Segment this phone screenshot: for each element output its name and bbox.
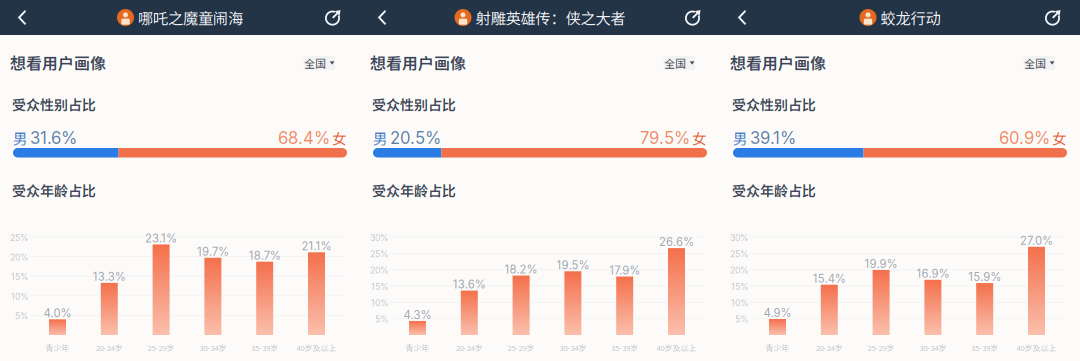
staticText: 受众性别占比 bbox=[372, 94, 456, 114]
staticText: 16.9% bbox=[916, 267, 949, 280]
staticText: 受众年龄占比 bbox=[732, 180, 816, 200]
staticText: 青少年 bbox=[45, 342, 69, 353]
staticText: 25-29岁 bbox=[148, 342, 175, 353]
staticText: 13.3% bbox=[93, 270, 126, 284]
staticText: 30-34岁 bbox=[919, 342, 946, 353]
staticText: 4.9% bbox=[763, 306, 791, 320]
staticText: 25% bbox=[730, 249, 749, 259]
staticText: 25-29岁 bbox=[508, 342, 535, 353]
staticText: 全国 bbox=[304, 55, 326, 71]
staticText: 20% bbox=[730, 265, 749, 276]
staticText: 受众性别占比 bbox=[12, 94, 96, 114]
staticText: 79.5% bbox=[640, 128, 690, 148]
staticText: 25% bbox=[10, 232, 29, 243]
staticText: 19.7% bbox=[197, 245, 229, 258]
staticText: 30% bbox=[370, 232, 389, 243]
staticText: 27.0% bbox=[1020, 234, 1053, 247]
staticText: 15% bbox=[11, 272, 29, 282]
button[interactable]: Back bbox=[720, 0, 765, 35]
button[interactable]: Share bbox=[666, 0, 720, 35]
staticText: 男 bbox=[733, 127, 748, 149]
button[interactable]: Share bbox=[306, 0, 360, 35]
button[interactable]: 全国 bbox=[663, 56, 695, 70]
staticText: 10% bbox=[11, 291, 29, 302]
button[interactable]: Share bbox=[1026, 0, 1080, 35]
staticText: 26.6% bbox=[659, 235, 694, 249]
button[interactable]: Back bbox=[360, 0, 405, 35]
staticText: 哪吒之魔童闹海 bbox=[138, 6, 243, 29]
staticText: 21.1% bbox=[301, 239, 331, 253]
button[interactable]: Back bbox=[0, 0, 45, 35]
staticText: 19.9% bbox=[865, 257, 898, 271]
staticText: 想看用户画像 bbox=[370, 51, 466, 74]
button[interactable]: 全国 bbox=[303, 56, 335, 70]
staticText: 15% bbox=[371, 281, 389, 292]
staticText: 15.9% bbox=[968, 270, 1001, 284]
staticText: 40岁及以上 bbox=[1016, 342, 1056, 353]
staticText: 13.6% bbox=[453, 278, 486, 291]
staticText: 5% bbox=[735, 314, 749, 325]
staticText: 20-24岁 bbox=[456, 342, 483, 353]
staticText: 射雕英雄传：侠之大者 bbox=[475, 6, 625, 29]
staticText: 全国 bbox=[1024, 55, 1046, 71]
staticText: 20% bbox=[10, 252, 29, 263]
staticText: 40岁及以上 bbox=[296, 342, 336, 353]
staticText: 4.3% bbox=[403, 308, 431, 322]
staticText: 60.9% bbox=[999, 128, 1050, 148]
staticText: 想看用户画像 bbox=[10, 51, 106, 74]
staticText: 30-34岁 bbox=[199, 342, 226, 353]
staticText: 68.4% bbox=[278, 128, 330, 148]
staticText: 30-34岁 bbox=[559, 342, 586, 353]
staticText: 31.6% bbox=[30, 128, 77, 148]
staticText: 受众年龄占比 bbox=[372, 180, 456, 200]
staticText: 女 bbox=[692, 127, 707, 149]
staticText: 10% bbox=[371, 298, 389, 308]
staticText: 受众年龄占比 bbox=[12, 180, 96, 200]
staticText: 男 bbox=[373, 127, 388, 149]
staticText: 青少年 bbox=[765, 342, 789, 353]
staticText: 18.7% bbox=[249, 249, 281, 262]
staticText: 男 bbox=[13, 127, 28, 149]
staticText: 23.1% bbox=[145, 231, 177, 245]
staticText: 35-39岁 bbox=[971, 342, 998, 353]
staticText: 4.0% bbox=[43, 306, 71, 320]
staticText: 蛟龙行动 bbox=[880, 6, 940, 29]
staticText: 25-29岁 bbox=[868, 342, 895, 353]
staticText: 19.5% bbox=[556, 258, 589, 272]
staticText: 40岁及以上 bbox=[656, 342, 696, 353]
staticText: 20.5% bbox=[390, 128, 441, 148]
staticText: 20-24岁 bbox=[816, 342, 843, 353]
staticText: 15% bbox=[731, 281, 749, 292]
staticText: 青少年 bbox=[405, 342, 429, 353]
staticText: 想看用户画像 bbox=[730, 51, 826, 74]
staticText: 女 bbox=[332, 127, 347, 149]
staticText: 受众性别占比 bbox=[732, 94, 816, 114]
staticText: 15.4% bbox=[813, 272, 846, 285]
staticText: 18.2% bbox=[505, 262, 538, 276]
staticText: 17.9% bbox=[609, 263, 640, 277]
staticText: 35-39岁 bbox=[251, 342, 278, 353]
staticText: 10% bbox=[731, 298, 749, 308]
staticText: 35-39岁 bbox=[611, 342, 638, 353]
staticText: 女 bbox=[1052, 127, 1067, 149]
staticText: 20% bbox=[370, 265, 389, 276]
button[interactable]: 全国 bbox=[1023, 56, 1055, 70]
staticText: 全国 bbox=[664, 55, 686, 71]
staticText: 30% bbox=[730, 232, 749, 243]
staticText: 5% bbox=[375, 314, 389, 325]
staticText: 20-24岁 bbox=[96, 342, 123, 353]
staticText: 39.1% bbox=[750, 128, 796, 148]
staticText: 5% bbox=[15, 311, 29, 321]
staticText: 25% bbox=[370, 249, 389, 259]
